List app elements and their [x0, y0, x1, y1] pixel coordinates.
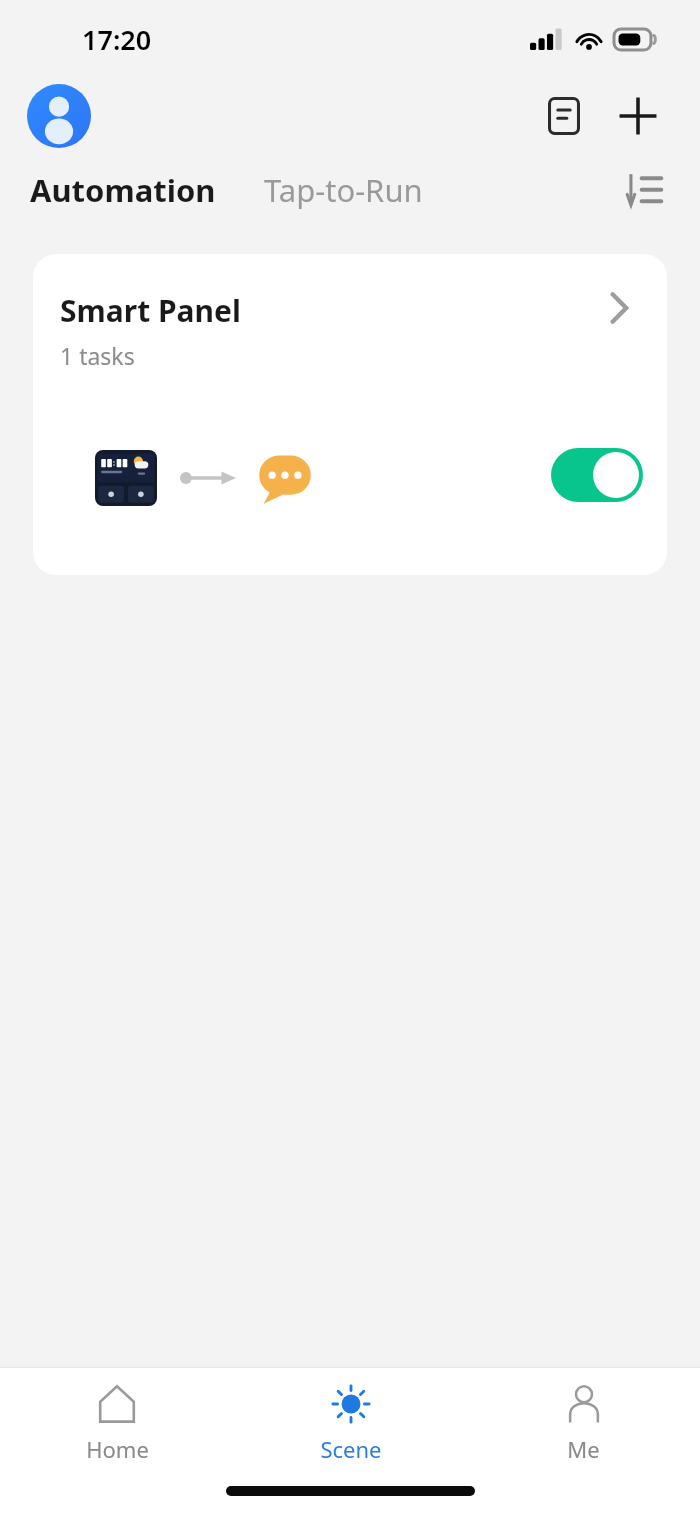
staticText: Me	[567, 1434, 600, 1464]
staticText: Tap-to-Run	[264, 169, 423, 211]
button[interactable]: Logs	[536, 88, 592, 144]
staticText: Scene	[320, 1434, 382, 1464]
button[interactable]: Sort	[618, 163, 672, 217]
button[interactable]: Tap-to-Run	[262, 163, 425, 217]
button[interactable]: Me	[467, 1368, 700, 1478]
button[interactable]: Scene	[234, 1368, 467, 1478]
button[interactable]: Open Smart Panel	[593, 282, 645, 334]
button[interactable]: Enable Smart Panel	[551, 448, 643, 502]
button[interactable]: Profile	[27, 84, 91, 148]
staticText: Smart Panel	[60, 290, 241, 331]
button[interactable]: Smart Panel	[33, 254, 667, 575]
staticText: Automation	[30, 169, 216, 211]
staticText: 17:20	[82, 21, 152, 58]
staticText: 1 tasks	[60, 340, 135, 371]
button[interactable]: Add	[610, 88, 666, 144]
button[interactable]: Home	[0, 1368, 234, 1478]
staticText: Home	[86, 1434, 149, 1464]
button[interactable]: Automation	[28, 163, 218, 217]
